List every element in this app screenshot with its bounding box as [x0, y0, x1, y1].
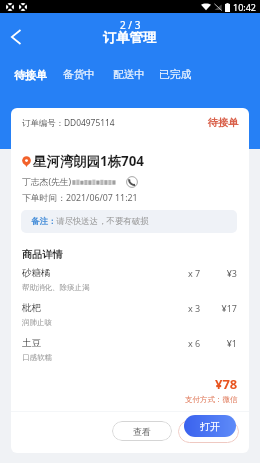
button[interactable]: Back — [3, 24, 29, 50]
staticText: 订单编号：DD04975114 — [22, 117, 115, 128]
staticText: 查看 — [133, 426, 151, 437]
staticText: ¥78 — [215, 375, 238, 393]
staticText: 配送中 — [113, 68, 146, 82]
staticText: 商品详情 — [22, 248, 63, 261]
staticText: 已完成 — [159, 68, 192, 82]
staticText: 下单时间：2021/06/07 11:21 — [22, 192, 138, 204]
staticText: 待接单 — [208, 116, 238, 129]
staticText: 打开 — [200, 420, 220, 433]
staticText: 砂糖橘 — [22, 267, 51, 279]
staticText: 2 / 3 — [120, 18, 141, 32]
staticText: ¥17 — [205, 302, 237, 314]
staticText: 备货中 — [63, 68, 96, 82]
staticText: x 3 — [174, 302, 214, 314]
staticText: x 7 — [174, 267, 214, 279]
staticText: 口感软糯 — [22, 353, 52, 362]
staticText: 10:42 — [233, 1, 257, 13]
staticText: 枇杷 — [22, 302, 41, 314]
button[interactable]: 打开 — [184, 415, 236, 437]
button[interactable]: 已完成 — [159, 68, 192, 82]
staticText: x 6 — [174, 337, 214, 349]
staticText: 帮助消化、除痰止渴 — [22, 283, 90, 292]
button[interactable]: Call — [126, 176, 138, 188]
staticText: 土豆 — [22, 337, 41, 349]
button[interactable]: 配送中 — [113, 68, 146, 82]
staticText: 订单管理 — [103, 29, 157, 46]
staticText: 支付方式：微信 — [185, 395, 238, 404]
button[interactable]: 备货中 — [63, 68, 96, 82]
staticText: 丁志杰(先生) — [22, 176, 72, 188]
staticText: ¥3 — [205, 267, 237, 279]
staticText: 润肺止咳 — [22, 318, 52, 327]
staticText: 待接单 — [14, 68, 47, 82]
staticText: ¥1 — [205, 337, 237, 349]
staticText: 星河湾朗园1栋704 — [33, 152, 144, 170]
staticText: 备注：请尽快送达，不要有破损 — [31, 216, 149, 227]
button[interactable]: 查看 — [112, 421, 172, 441]
button[interactable]: 待接单 — [14, 68, 47, 82]
